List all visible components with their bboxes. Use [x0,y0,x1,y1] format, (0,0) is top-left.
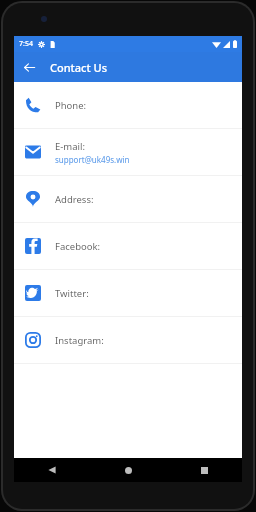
button[interactable]: Facebook: [14,223,242,269]
staticText: support@uk49s.win [55,154,130,165]
button[interactable]: Instagram: [14,317,242,363]
button[interactable]: Address: [14,176,242,222]
staticText: Contact Us [50,60,108,75]
button[interactable]: Phone: [14,82,242,128]
staticText: Twitter: [55,287,89,300]
staticText: Instagram: [55,334,104,347]
button[interactable]: Navigate up [14,52,44,82]
button[interactable]: Twitter: [14,270,242,316]
staticText: Phone: [55,99,87,112]
staticText: Address: [55,193,94,206]
button[interactable]: Home [90,458,166,482]
button[interactable]: E-mail: [14,129,242,175]
button[interactable]: Recent apps [166,458,242,482]
staticText: Facebook: [55,240,101,253]
staticText: 7:54 [19,39,33,49]
staticText: E-mail: [55,140,86,153]
button[interactable]: Back [14,458,90,482]
